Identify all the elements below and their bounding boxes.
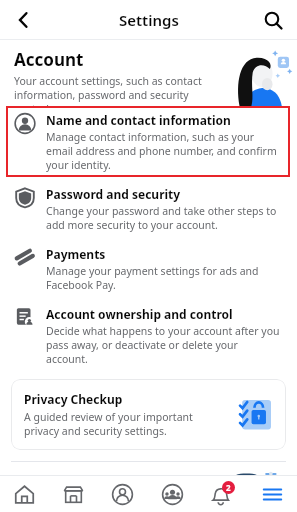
staticText: A guided review of your important privac…	[24, 410, 225, 438]
staticText: Manage your payment settings for ads and…	[46, 264, 282, 292]
staticText: Account ownership and control	[46, 306, 233, 322]
staticText: Payments	[46, 246, 106, 262]
staticText: Password and security	[46, 186, 181, 202]
staticText: Your account settings, such as contact i…	[14, 74, 219, 106]
button[interactable]: Notifications	[197, 476, 247, 512]
button[interactable]: Privacy Checkup	[11, 379, 286, 450]
button[interactable]: Name and contact information	[6, 106, 290, 177]
staticText: Name and contact information	[46, 112, 231, 128]
button[interactable]: Marketplace	[49, 476, 98, 512]
button[interactable]: Back	[4, 0, 44, 40]
staticText: Privacy Checkup	[24, 391, 123, 407]
button[interactable]: Menu	[247, 476, 297, 512]
button[interactable]: Account ownership and control	[6, 297, 290, 371]
staticText: Decide what happens to your account afte…	[46, 324, 282, 366]
button[interactable]: Password and security	[6, 177, 290, 237]
button[interactable]: Profile	[98, 476, 147, 512]
button[interactable]: Home	[0, 476, 49, 512]
staticText: Settings	[119, 10, 179, 30]
staticText: 2	[226, 482, 231, 493]
button[interactable]: Payments	[6, 237, 290, 297]
staticText: Change your password and take other step…	[46, 204, 282, 232]
staticText: Manage contact information, such as your…	[46, 130, 282, 172]
staticText: Account	[14, 48, 84, 71]
button[interactable]: Groups	[147, 476, 197, 512]
button[interactable]: Search	[253, 0, 293, 40]
